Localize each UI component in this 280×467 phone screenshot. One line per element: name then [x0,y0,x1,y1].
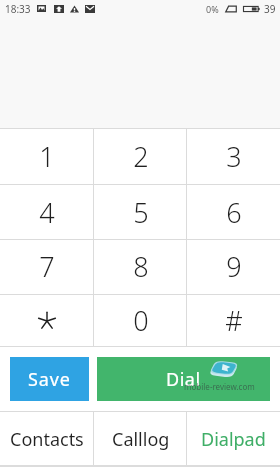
button[interactable]: Contacts [0,411,94,467]
staticText: 0 [133,302,149,339]
staticText: 4 [39,194,55,231]
staticText: Calllog [112,427,170,452]
staticText: 7 [39,248,55,285]
staticText: 0% [206,3,219,15]
button[interactable]: 8 [94,239,187,294]
staticText: Dialpad [201,427,266,452]
staticText: 8 [133,248,149,285]
button[interactable]: Star [0,294,94,346]
staticText: 18:33 [5,2,31,16]
button[interactable]: 7 [0,239,94,294]
staticText: Dial [166,367,201,392]
button[interactable]: 5 [94,184,187,240]
button[interactable]: Save [10,357,89,401]
staticText: Contacts [10,427,84,452]
button[interactable]: 2 [94,128,187,184]
button[interactable]: 0 [94,294,187,346]
staticText: # [225,302,243,339]
button[interactable]: 4 [0,184,94,240]
staticText: 5 [133,194,149,231]
button[interactable]: 6 [187,184,280,240]
button[interactable]: Dialpad [187,411,280,467]
staticText: 9 [226,248,242,285]
staticText: 39 [264,2,276,16]
button[interactable]: 1 [0,128,94,184]
button[interactable]: Calllog [94,411,187,467]
staticText: mobile-review.com [184,381,255,392]
staticText: 2 [133,138,149,175]
button[interactable]: 3 [187,128,280,184]
staticText: 3 [226,138,242,175]
staticText: 6 [226,194,242,231]
staticText: 1 [39,138,55,175]
staticText: Save [28,367,71,392]
button[interactable]: # [187,294,280,346]
button[interactable]: Dial [97,357,270,401]
button[interactable]: 9 [187,239,280,294]
